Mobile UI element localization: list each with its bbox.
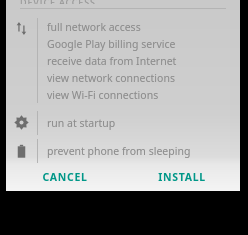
staticText: DEVICE ACCESS [20, 0, 96, 4]
staticText: INSTALL [158, 170, 206, 184]
button[interactable]: CANCEL [6, 163, 123, 191]
button[interactable]: Run at startup [6, 111, 240, 135]
button[interactable]: INSTALL [123, 163, 240, 191]
button[interactable]: Prevent phone from sleeping [6, 139, 240, 163]
staticText: view Wi-Fi connections [47, 88, 159, 102]
staticText: CANCEL [42, 170, 88, 184]
other: Network access [6, 18, 37, 103]
staticText: view network connections [47, 71, 175, 85]
other: Run at startup [6, 111, 37, 135]
staticText: run at startup [47, 116, 116, 130]
staticText: Google Play billing service [47, 37, 176, 51]
staticText: full network access [47, 20, 141, 34]
other: Prevent phone from sleeping [6, 139, 37, 163]
button[interactable]: Network access [6, 18, 240, 103]
staticText: prevent phone from sleeping [47, 144, 191, 158]
staticText: receive data from Internet [47, 54, 177, 68]
